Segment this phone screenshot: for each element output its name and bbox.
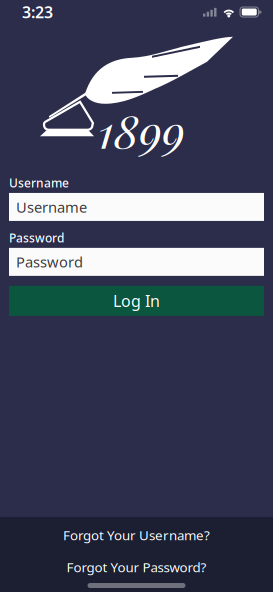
staticText: Username [16,197,87,217]
staticText: Password [9,230,64,246]
staticText: 1899 [98,100,185,160]
staticText: Log In [113,290,160,311]
staticText: Username [9,175,69,191]
staticText: Forgot Your Username? [63,526,210,544]
button[interactable]: Log In [9,286,264,316]
staticText: 3:23 [22,1,53,23]
staticText: Password [16,252,83,272]
button[interactable]: Username [9,193,264,221]
button[interactable]: Forgot Your Password? [0,551,273,583]
button[interactable]: Forgot Your Username? [0,519,273,551]
button[interactable]: Password [9,248,264,276]
staticText: Forgot Your Password? [66,558,206,576]
